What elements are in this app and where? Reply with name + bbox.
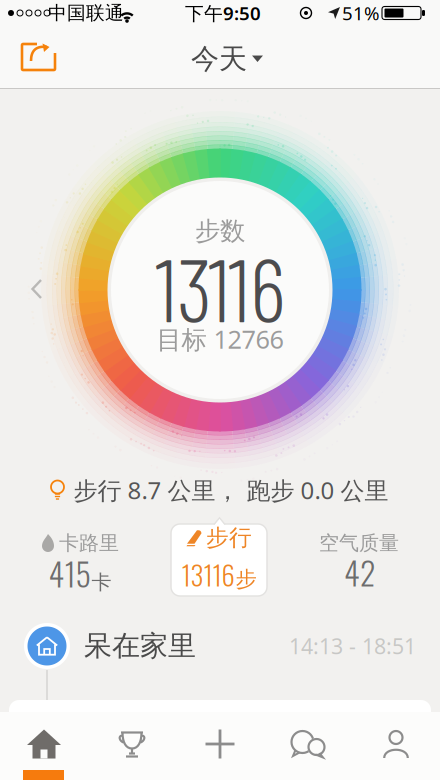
staticText: 步数 (195, 215, 245, 246)
button[interactable]: 今天 (191, 42, 263, 76)
button[interactable]: Share (17, 37, 61, 81)
staticText: 卡 (91, 570, 111, 595)
staticText: 51% (342, 1, 380, 25)
button[interactable]: 排行榜 (88, 714, 176, 774)
staticText: 卡路里 (59, 531, 119, 555)
staticText: 步行 (206, 524, 252, 552)
button[interactable]: 我的 (352, 714, 440, 774)
button[interactable]: 步行 13116步 (171, 524, 267, 596)
staticText: 空气质量 (319, 531, 399, 555)
staticText: 13116 (155, 234, 285, 340)
staticText: 目标 12766 (156, 322, 283, 356)
button[interactable]: 前一天 (31, 279, 43, 299)
staticText: 步 (235, 566, 256, 592)
staticText: 下午9:50 (185, 1, 261, 25)
staticText: 13116 (181, 555, 234, 594)
staticText: 14:13 - 18:51 (289, 632, 416, 660)
staticText: 今天 (191, 42, 247, 76)
staticText: 中国联通 (48, 1, 124, 24)
staticText: 42 (344, 548, 376, 596)
button[interactable]: 消息 (264, 714, 352, 774)
button[interactable]: 呆在家里 (24, 623, 416, 669)
staticText: 步行 8.7 公里， 跑步 0.0 公里 (73, 474, 388, 506)
staticText: 415 (48, 549, 90, 597)
button[interactable]: 首页 (0, 714, 88, 774)
button[interactable]: 添加 (176, 714, 264, 774)
staticText: 呆在家里 (84, 629, 196, 663)
